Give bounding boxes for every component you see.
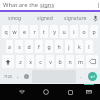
staticText: q [4,28,8,35]
button[interactable]: signature [60,12,90,24]
staticText: ?123 [4,74,12,79]
staticText: l [88,43,90,50]
button[interactable]: Home [39,84,53,100]
staticText: i [73,28,75,35]
button[interactable]: h [55,40,63,53]
staticText: h [57,43,61,50]
staticText: signs [40,1,55,9]
button[interactable]: Shift [2,55,14,68]
button[interactable]: b [56,55,64,68]
button[interactable]: y [50,25,58,38]
button[interactable]: t [40,25,48,38]
button[interactable]: j [65,40,73,53]
staticText: a [8,43,11,50]
button[interactable]: z [16,55,24,68]
button[interactable]: , [15,70,21,83]
button[interactable]: s [15,40,23,53]
staticText: . [80,73,82,80]
button[interactable]: d [25,40,33,53]
button[interactable]: Enter [88,72,97,81]
staticText: w [12,28,17,35]
staticText: signature [64,15,87,22]
staticText: e [23,28,26,35]
button[interactable]: Voice input [90,12,100,24]
staticText: k [78,43,81,50]
button[interactable]: a [6,40,13,53]
staticText: d [27,43,31,50]
button[interactable]: n [66,55,74,68]
staticText: p [92,28,96,35]
staticText: z [19,58,22,65]
staticText: y [53,28,56,35]
button[interactable]: Recent apps [63,84,77,100]
button[interactable]: x [26,55,34,68]
button[interactable]: Back [15,84,29,100]
staticText: signed [37,15,53,22]
button[interactable]: p [90,25,98,38]
button[interactable]: u [60,25,68,38]
staticText: x [29,58,32,65]
button[interactable]: l [85,40,93,53]
staticText: , [17,73,19,80]
staticText: f [38,43,40,50]
button[interactable]: e [20,25,28,38]
staticText: o [82,28,86,35]
staticText: What are the [3,1,40,9]
button[interactable]: q [2,25,9,38]
staticText: u [62,28,66,35]
button[interactable]: . [78,70,84,83]
staticText: c [39,58,42,65]
button[interactable]: v [46,55,54,68]
staticText: b [58,58,62,65]
staticText: g [47,43,51,50]
button[interactable]: Change keyboard [22,69,31,84]
button[interactable]: o [80,25,88,38]
button[interactable]: c [36,55,44,68]
button[interactable]: signed [30,12,60,24]
button[interactable]: smog [0,12,30,24]
button[interactable]: f [35,40,43,53]
staticText: t [43,28,45,35]
staticText: smog [8,15,22,22]
button[interactable]: g [45,40,53,53]
staticText: n [68,58,72,65]
button[interactable]: Hide keyboard [82,84,96,100]
button[interactable]: k [75,40,83,53]
staticText: s [18,43,21,50]
button[interactable]: ?123 [2,70,13,83]
button[interactable]: r [30,25,38,38]
button[interactable]: i [70,25,78,38]
button[interactable]: w [11,25,18,38]
staticText: j [68,43,70,50]
button[interactable]: m [76,55,84,68]
staticText: m [78,58,83,65]
staticText: v [49,58,52,65]
staticText: r [33,28,36,35]
button[interactable]: Backspace [86,55,98,68]
